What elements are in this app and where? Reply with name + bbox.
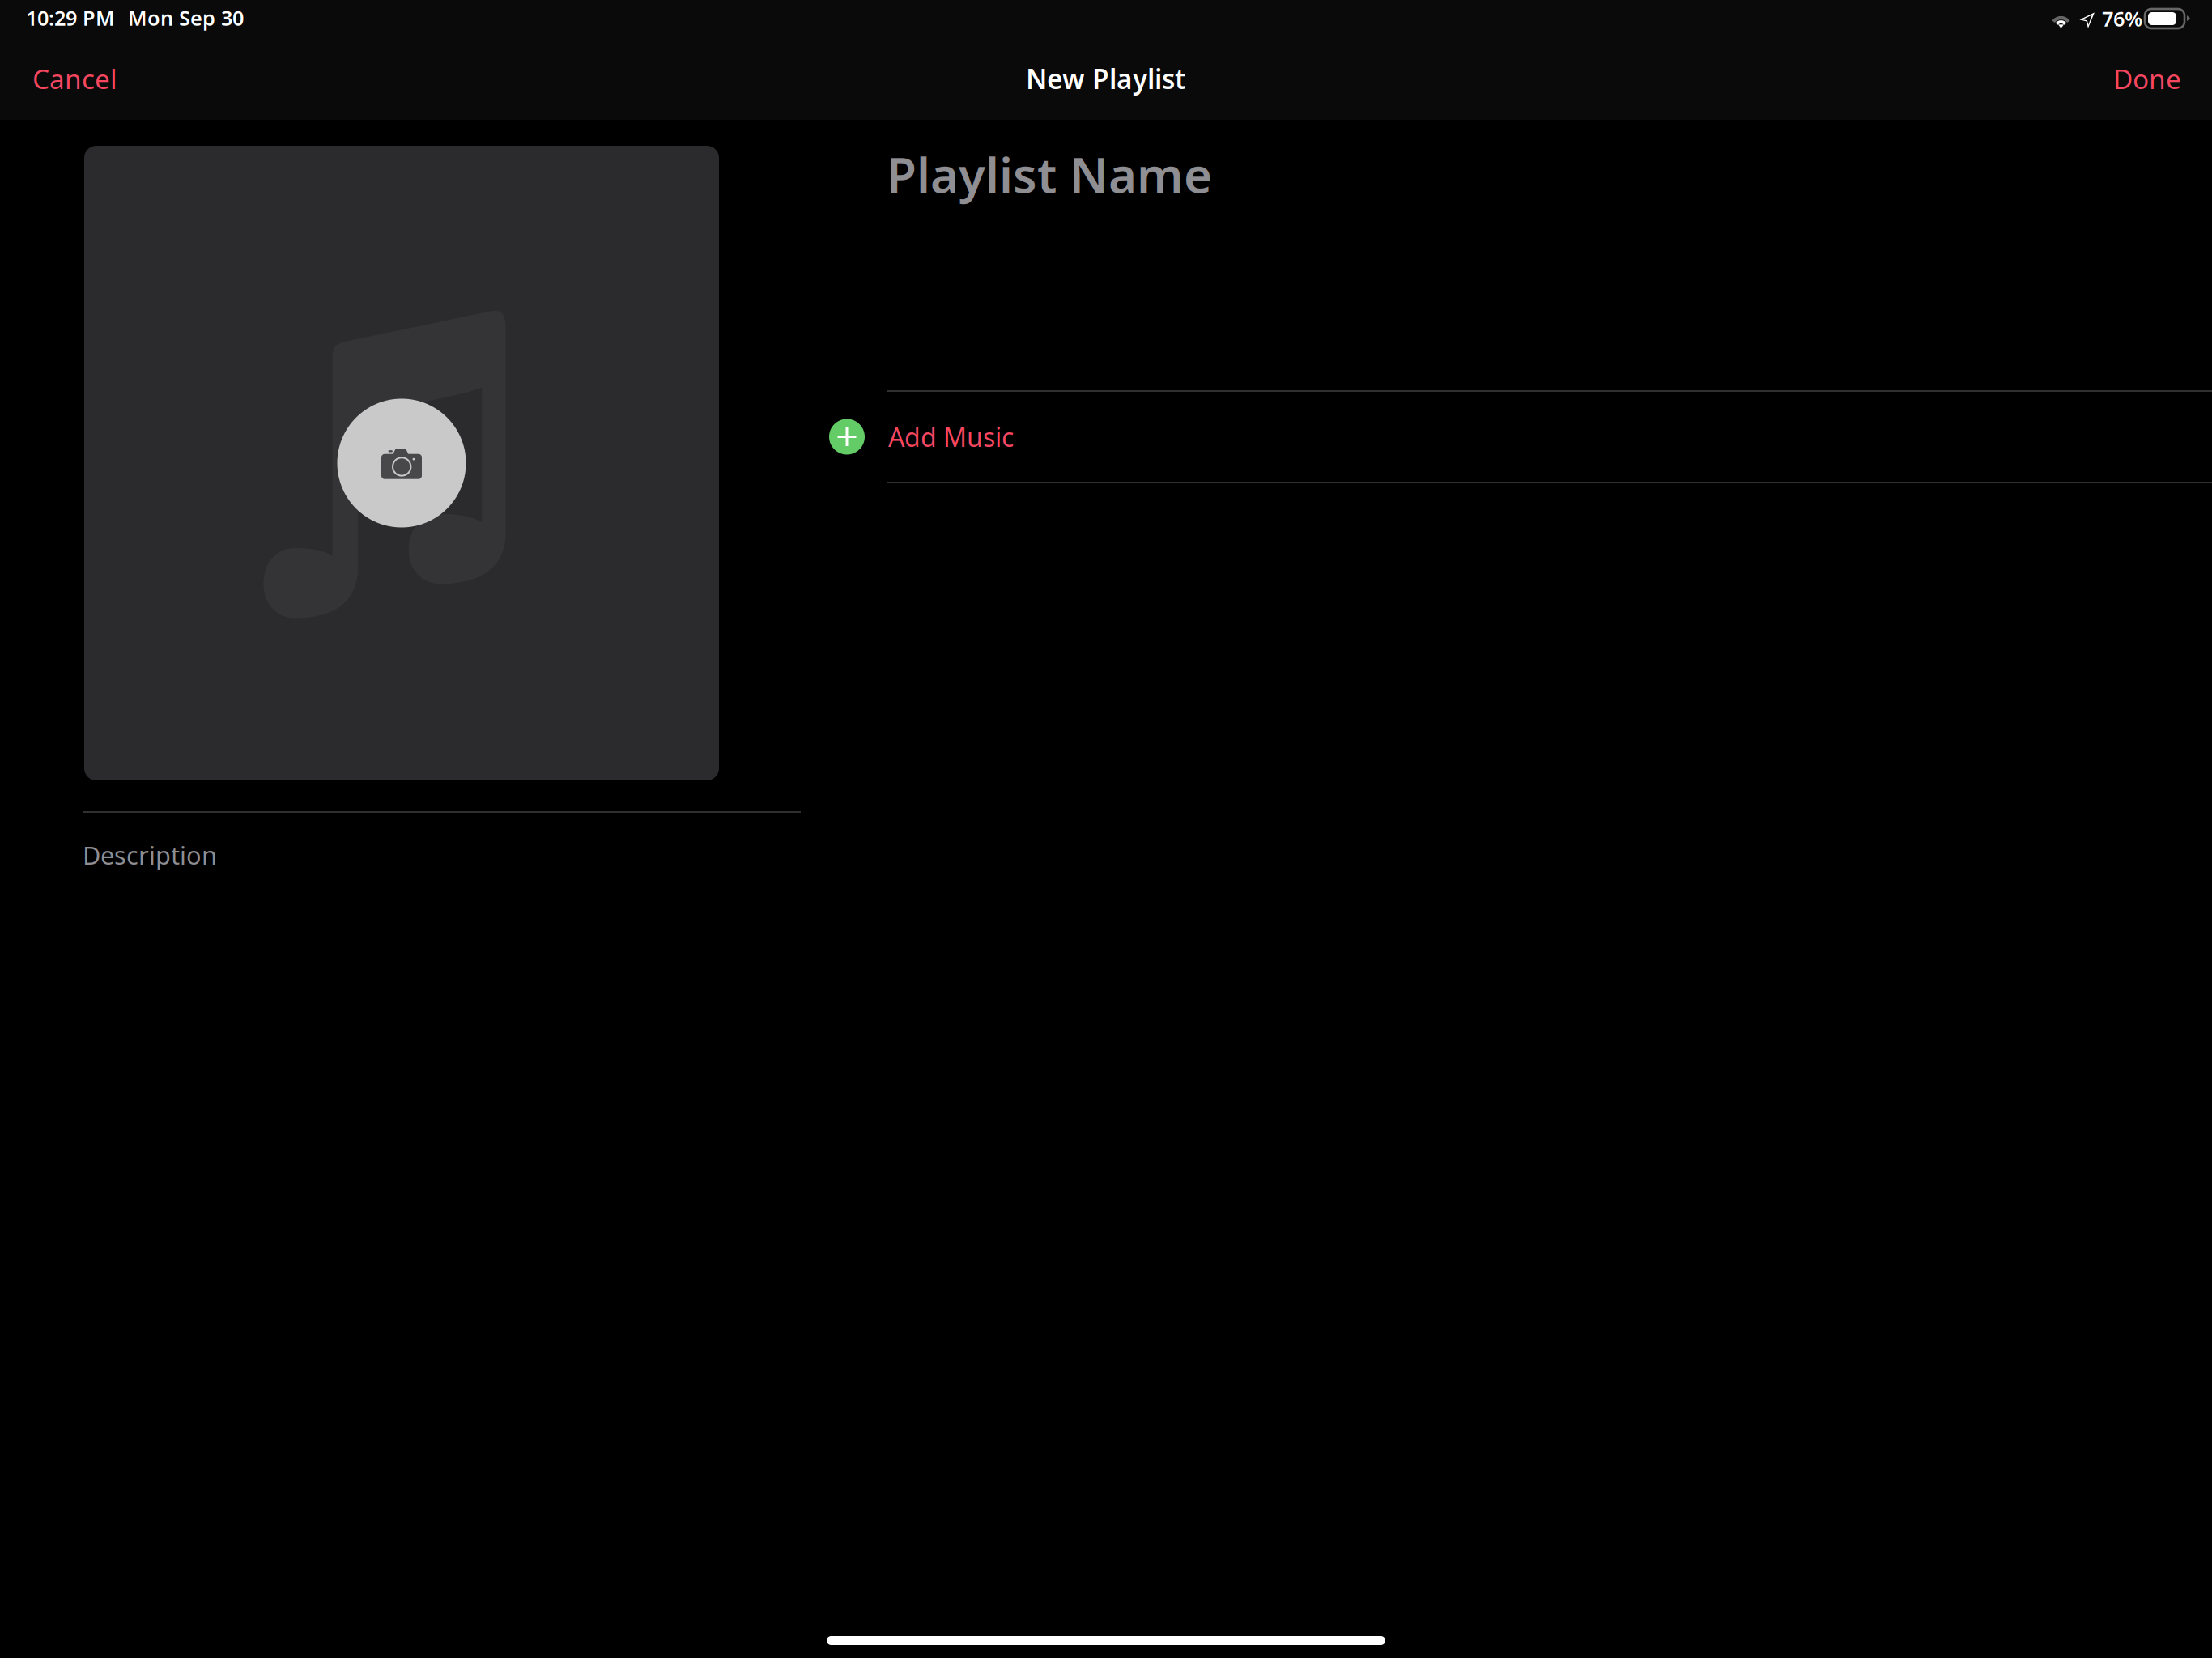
button[interactable]: Description (83, 827, 800, 883)
staticText: Cancel (32, 61, 117, 97)
staticText: New Playlist (1026, 61, 1186, 97)
button[interactable]: Cancel (21, 46, 129, 111)
staticText: 76% (2102, 5, 2142, 32)
staticText: 10:29 PM (26, 4, 115, 31)
staticText: Add Music (888, 420, 1014, 454)
button[interactable]: Done (2102, 46, 2193, 111)
staticText: Description (83, 838, 217, 871)
button[interactable]: Choose playlist artwork (84, 146, 719, 780)
staticText: Mon Sep 30 (128, 4, 244, 31)
staticText: Done (2113, 61, 2181, 97)
button[interactable]: Add Music (829, 391, 2212, 483)
button[interactable]: Playlist Name (887, 125, 2211, 223)
staticText: Playlist Name (887, 142, 1212, 206)
